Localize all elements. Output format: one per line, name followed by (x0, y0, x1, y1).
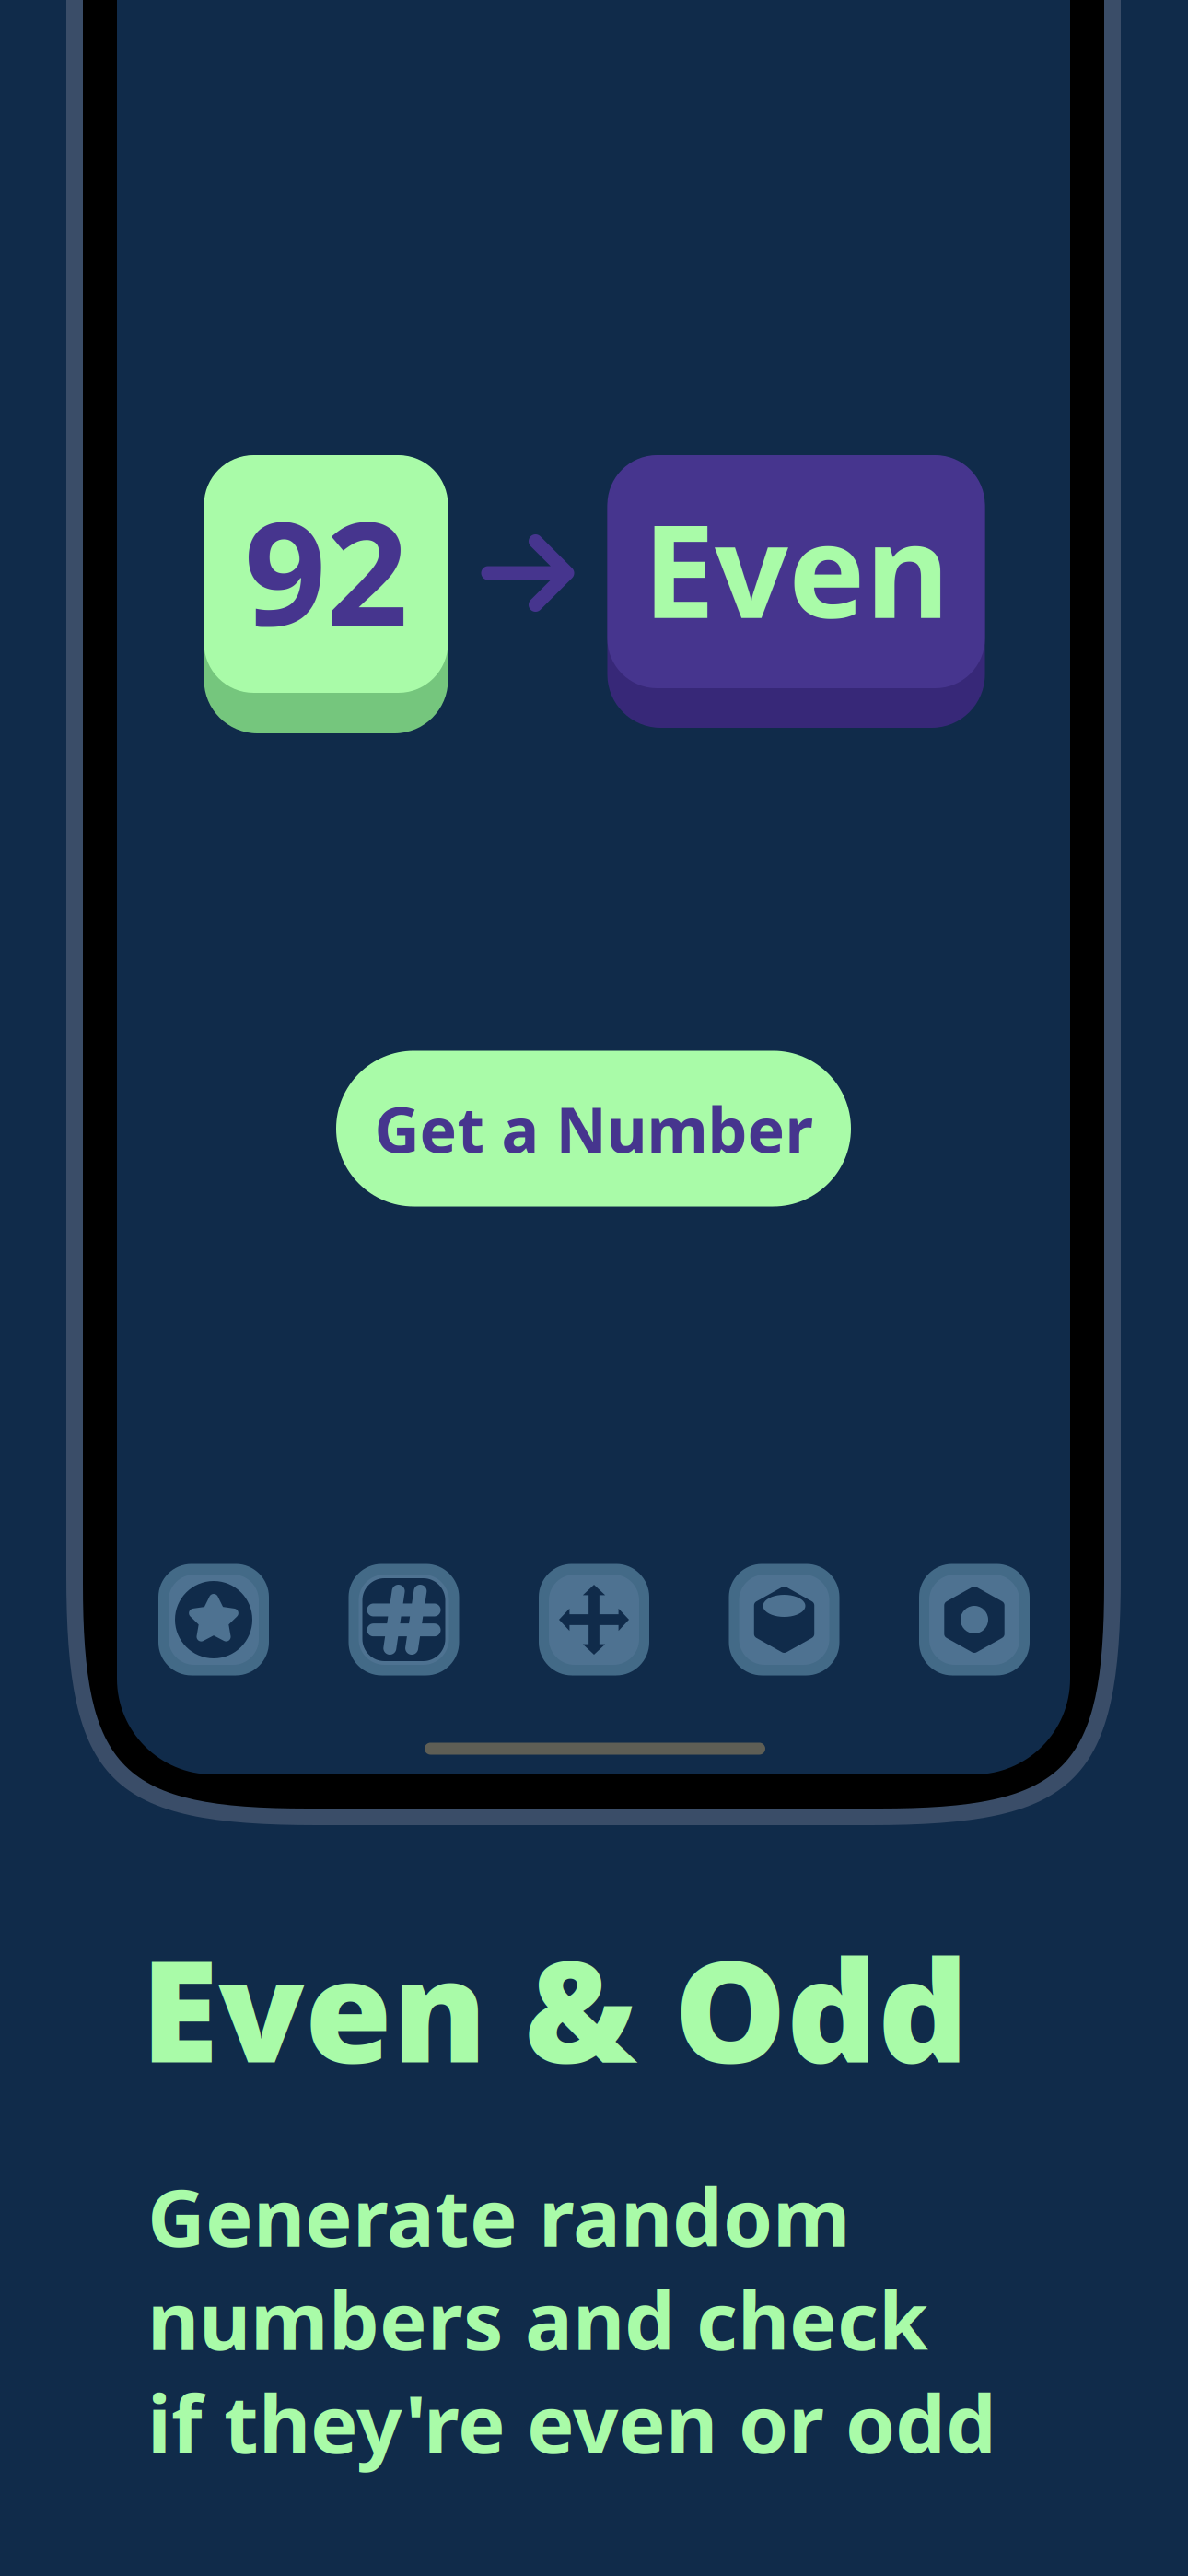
staticText: Generate random (147, 2163, 851, 2269)
staticText: Even & Odd (141, 1914, 969, 2101)
staticText: numbers and check (147, 2266, 928, 2372)
button[interactable]: Settings (919, 1564, 1030, 1675)
staticText: 92 (244, 475, 408, 666)
button[interactable]: History (729, 1564, 839, 1675)
button[interactable]: Numbers (349, 1564, 459, 1675)
staticText: Get a Number (374, 1087, 813, 1170)
button[interactable]: Favorites (158, 1564, 269, 1675)
staticText: if they're even or odd (147, 2369, 996, 2475)
button[interactable]: Shuffle (539, 1564, 649, 1675)
staticText: Even (643, 482, 949, 654)
button[interactable]: Get a Number (336, 1051, 851, 1206)
